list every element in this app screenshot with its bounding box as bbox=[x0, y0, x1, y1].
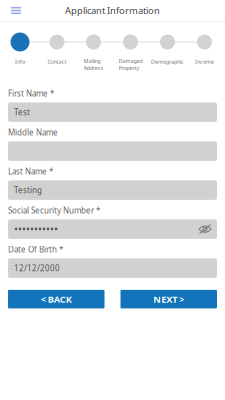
staticText: NEXT > bbox=[153, 293, 184, 305]
staticText: Contact bbox=[47, 58, 66, 65]
button[interactable]: Menu bbox=[0, 1, 27, 20]
staticText: Demographic bbox=[151, 58, 184, 65]
staticText: Damaged Property bbox=[118, 57, 142, 72]
staticText: ••••••••••• bbox=[14, 222, 58, 236]
staticText: Mailing Address bbox=[83, 57, 103, 72]
staticText: Info bbox=[15, 58, 25, 65]
staticText: Applicant Information bbox=[65, 4, 160, 17]
staticText: First Name * bbox=[8, 88, 54, 99]
button[interactable]: < BACK bbox=[8, 290, 104, 308]
staticText: 12/12/2000 bbox=[14, 263, 60, 273]
staticText: Test bbox=[14, 107, 30, 117]
staticText: Social Security Number * bbox=[8, 205, 100, 216]
button[interactable]: NEXT > bbox=[120, 290, 217, 308]
staticText: Last Name * bbox=[8, 166, 53, 177]
staticText: Date Of Birth * bbox=[8, 244, 63, 255]
staticText: Middle Name bbox=[8, 127, 58, 138]
staticText: Testing bbox=[14, 185, 42, 195]
staticText: < BACK bbox=[41, 293, 72, 305]
staticText: Income bbox=[195, 58, 214, 65]
